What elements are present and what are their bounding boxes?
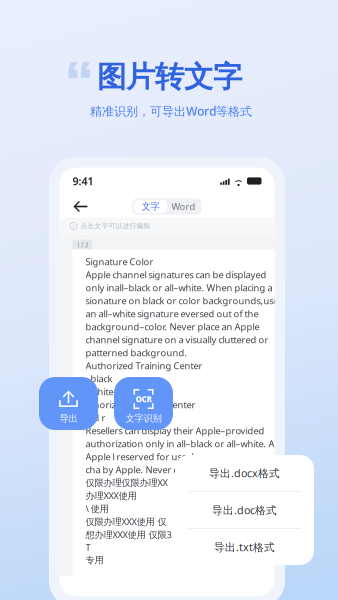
staticText: 图片转文字 xyxy=(97,59,242,95)
button[interactable]: Word xyxy=(167,200,200,213)
staticText: i xyxy=(73,223,74,229)
button[interactable]: 导出.doc格式 xyxy=(175,492,314,528)
staticText: 导出 xyxy=(59,412,77,424)
staticText: 导出.docx格式 xyxy=(209,466,280,480)
staticText: 1/3 xyxy=(76,239,89,250)
staticText: 文字识别 xyxy=(125,412,161,424)
button[interactable]: OCR xyxy=(114,377,173,430)
button[interactable]: 导出.docx格式 xyxy=(175,455,314,491)
button[interactable]: Back xyxy=(68,195,92,217)
staticText: 9:41 xyxy=(72,174,93,188)
button[interactable]: 文字 xyxy=(134,200,167,213)
staticText: 导出.doc格式 xyxy=(212,503,277,517)
staticText: 文字 xyxy=(141,201,159,212)
staticText: OCR xyxy=(135,394,151,404)
staticText: Signature Color Apple channel signatures… xyxy=(85,255,280,566)
staticText: Word xyxy=(171,200,195,213)
staticText: 点击文字可以进行编辑 xyxy=(80,222,150,230)
button[interactable]: 导出 xyxy=(39,377,98,430)
button[interactable]: 导出.txt格式 xyxy=(175,529,314,565)
staticText: 精准识别，可导出Word等格式 xyxy=(90,103,252,119)
staticText: 导出.txt格式 xyxy=(214,540,275,554)
